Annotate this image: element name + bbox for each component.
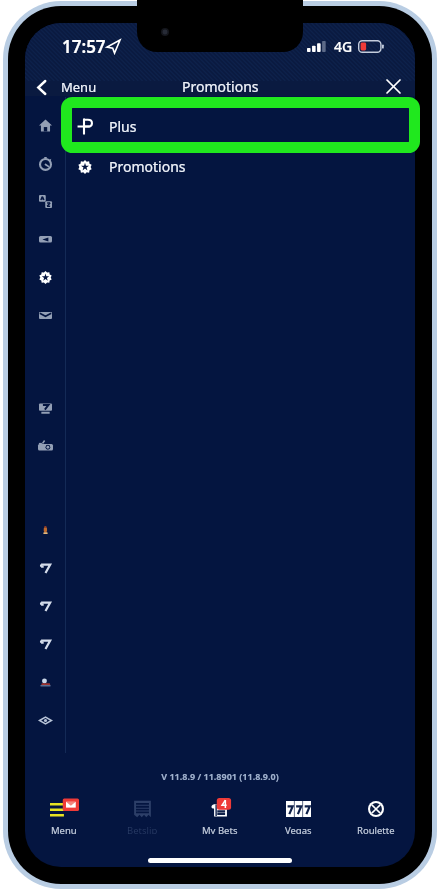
button[interactable]: In-Play (25, 144, 65, 182)
staticText: Plus (109, 117, 137, 136)
button[interactable]: Virtuals (25, 701, 65, 739)
button[interactable]: Horse Racing (25, 511, 65, 549)
button[interactable]: Inbox (25, 296, 65, 334)
button[interactable]: Slots A (25, 549, 65, 587)
button[interactable]: Live Stream (25, 220, 65, 258)
button[interactable]: Close (376, 80, 415, 93)
button[interactable]: My Bets (181, 798, 259, 834)
staticText: Menu (51, 824, 77, 834)
button[interactable]: Promotions (65, 146, 415, 187)
staticText: 4G (334, 37, 353, 56)
button[interactable]: Roulette (337, 798, 415, 834)
button[interactable]: Slots B (25, 587, 65, 625)
button[interactable]: Menu (25, 78, 107, 96)
staticText: 17:57 (62, 35, 106, 58)
button[interactable]: Plus (65, 106, 415, 146)
staticText: Vegas (285, 824, 312, 834)
staticText: Promotions (182, 77, 259, 96)
staticText: Menu (61, 78, 97, 96)
button[interactable]: Casino (25, 427, 65, 465)
button[interactable]: Vegas (259, 798, 337, 834)
button[interactable]: Slots C (25, 625, 65, 663)
staticText: Roulette (357, 824, 395, 834)
button[interactable]: A-Z Sports (25, 182, 65, 220)
button[interactable]: Home (25, 106, 65, 144)
button[interactable]: Betslip (103, 798, 181, 834)
staticText: Promotions (109, 157, 186, 176)
button[interactable]: Menu (25, 798, 103, 834)
staticText: My Bets (202, 824, 238, 834)
button[interactable]: Poker (25, 663, 65, 701)
button[interactable]: Racing TV (25, 389, 65, 427)
button[interactable]: Offers (25, 258, 65, 296)
staticText: V 11.8.9 / 11.8901 (11.8.9.0) (25, 770, 415, 782)
staticText: Betslip (127, 824, 158, 834)
